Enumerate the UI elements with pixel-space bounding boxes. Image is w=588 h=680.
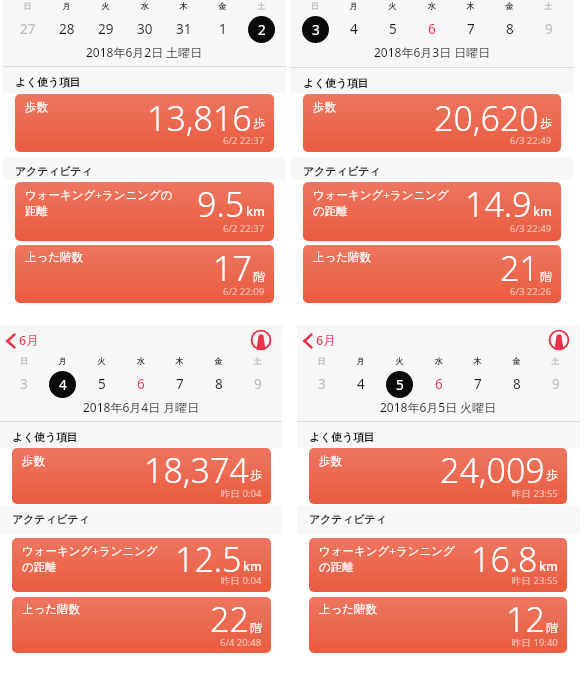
button[interactable]: 上った階数: [15, 245, 274, 303]
staticText: 6/3 22:26: [510, 285, 552, 298]
button[interactable]: 28: [47, 15, 86, 43]
staticText: 6/4 20:48: [220, 636, 262, 649]
staticText: 日: [296, 1, 334, 11]
button[interactable]: ウォーキング+ランニングの距離: [15, 182, 274, 241]
button[interactable]: 3: [296, 15, 334, 43]
staticText: 木: [160, 356, 199, 366]
staticText: 階: [546, 620, 558, 635]
staticText: 金: [203, 1, 242, 11]
button[interactable]: 29: [86, 15, 125, 43]
button[interactable]: 歩数: [309, 448, 567, 504]
staticText: 2018年6月3日 日曜日: [374, 44, 491, 60]
button[interactable]: 9: [238, 370, 277, 398]
staticText: アクティビティ: [303, 165, 381, 179]
button[interactable]: 8: [199, 370, 238, 398]
button[interactable]: Profile: [549, 330, 569, 350]
button[interactable]: 6月: [301, 332, 336, 349]
button[interactable]: ウォーキング+ランニングの距離: [12, 538, 271, 592]
button[interactable]: 歩数: [15, 94, 274, 152]
staticText: 3: [20, 375, 28, 393]
staticText: アクティビティ: [309, 513, 387, 527]
button[interactable]: 6月: [4, 332, 39, 349]
staticText: km: [533, 203, 552, 220]
staticText: 21: [500, 245, 539, 291]
staticText: 2018年6月4日 月曜日: [83, 399, 200, 415]
staticText: 月: [334, 1, 373, 11]
button[interactable]: 3: [5, 370, 43, 398]
staticText: 歩数: [319, 454, 419, 468]
button[interactable]: 4: [43, 370, 82, 398]
staticText: 12.5: [175, 538, 242, 582]
staticText: 6/2 22:09: [223, 285, 265, 298]
button[interactable]: 5: [380, 370, 419, 398]
button[interactable]: ウォーキング+ランニングの距離: [303, 182, 561, 241]
staticText: 6: [137, 375, 145, 393]
staticText: アクティビティ: [15, 165, 93, 179]
staticText: 階: [540, 269, 552, 284]
button[interactable]: 1: [203, 15, 242, 43]
staticText: 5: [98, 375, 106, 393]
staticText: ウォーキング+ランニングの距離: [22, 543, 162, 575]
button[interactable]: 31: [164, 15, 203, 43]
button[interactable]: 9: [536, 370, 575, 398]
staticText: 27: [20, 20, 36, 38]
staticText: 昨日 23:55: [512, 487, 558, 500]
button[interactable]: 9: [529, 15, 568, 43]
staticText: 4: [59, 376, 67, 394]
button[interactable]: Profile: [251, 330, 271, 350]
button[interactable]: 8: [497, 370, 536, 398]
button[interactable]: 7: [160, 370, 199, 398]
button[interactable]: 30: [125, 15, 164, 43]
staticText: ウォーキング+ランニングの距離: [313, 187, 453, 219]
staticText: 16.8: [471, 538, 538, 582]
button[interactable]: 27: [8, 15, 47, 43]
button[interactable]: 5: [373, 15, 412, 43]
staticText: 木: [458, 356, 497, 366]
button[interactable]: 歩数: [12, 448, 271, 504]
button[interactable]: 4: [334, 15, 373, 43]
staticText: ウォーキング+ランニングの距離: [319, 543, 459, 575]
staticText: 月: [43, 356, 82, 366]
staticText: 歩: [546, 467, 558, 482]
button[interactable]: 上った階数: [309, 597, 567, 653]
staticText: 木: [164, 1, 203, 11]
staticText: 上った階数: [25, 250, 125, 264]
staticText: 28: [59, 20, 75, 38]
button[interactable]: 5: [82, 370, 121, 398]
button[interactable]: 上った階数: [303, 245, 561, 303]
button[interactable]: 2: [242, 15, 281, 43]
button[interactable]: 6: [121, 370, 160, 398]
staticText: 8: [215, 375, 223, 393]
button[interactable]: 7: [458, 370, 497, 398]
staticText: 2018年6月2日 土曜日: [86, 44, 203, 60]
staticText: 6/2 22:37: [223, 222, 265, 235]
staticText: 月: [341, 356, 380, 366]
button[interactable]: 4: [341, 370, 380, 398]
staticText: 31: [176, 20, 192, 38]
staticText: 22: [210, 597, 249, 642]
button[interactable]: 歩数: [303, 94, 561, 152]
staticText: 2: [258, 21, 266, 39]
staticText: 4: [350, 20, 358, 38]
button[interactable]: 8: [490, 15, 529, 43]
staticText: 歩数: [25, 100, 125, 114]
staticText: 土: [238, 356, 277, 366]
staticText: 木: [451, 1, 490, 11]
staticText: 9: [552, 375, 560, 393]
button[interactable]: ウォーキング+ランニングの距離: [309, 538, 567, 592]
button[interactable]: 6: [412, 15, 451, 43]
button[interactable]: 上った階数: [12, 597, 271, 653]
staticText: 6: [435, 375, 443, 393]
staticText: 水: [412, 1, 451, 11]
staticText: 13,816: [147, 95, 252, 141]
staticText: 3: [318, 375, 326, 393]
staticText: よく使う項目: [303, 77, 369, 91]
staticText: 12: [506, 597, 545, 642]
staticText: km: [539, 558, 558, 575]
button[interactable]: 3: [302, 370, 341, 398]
staticText: 2018年6月5日 火曜日: [380, 399, 497, 415]
staticText: 水: [121, 356, 160, 366]
staticText: 8: [513, 375, 521, 393]
button[interactable]: 6: [419, 370, 458, 398]
button[interactable]: 7: [451, 15, 490, 43]
